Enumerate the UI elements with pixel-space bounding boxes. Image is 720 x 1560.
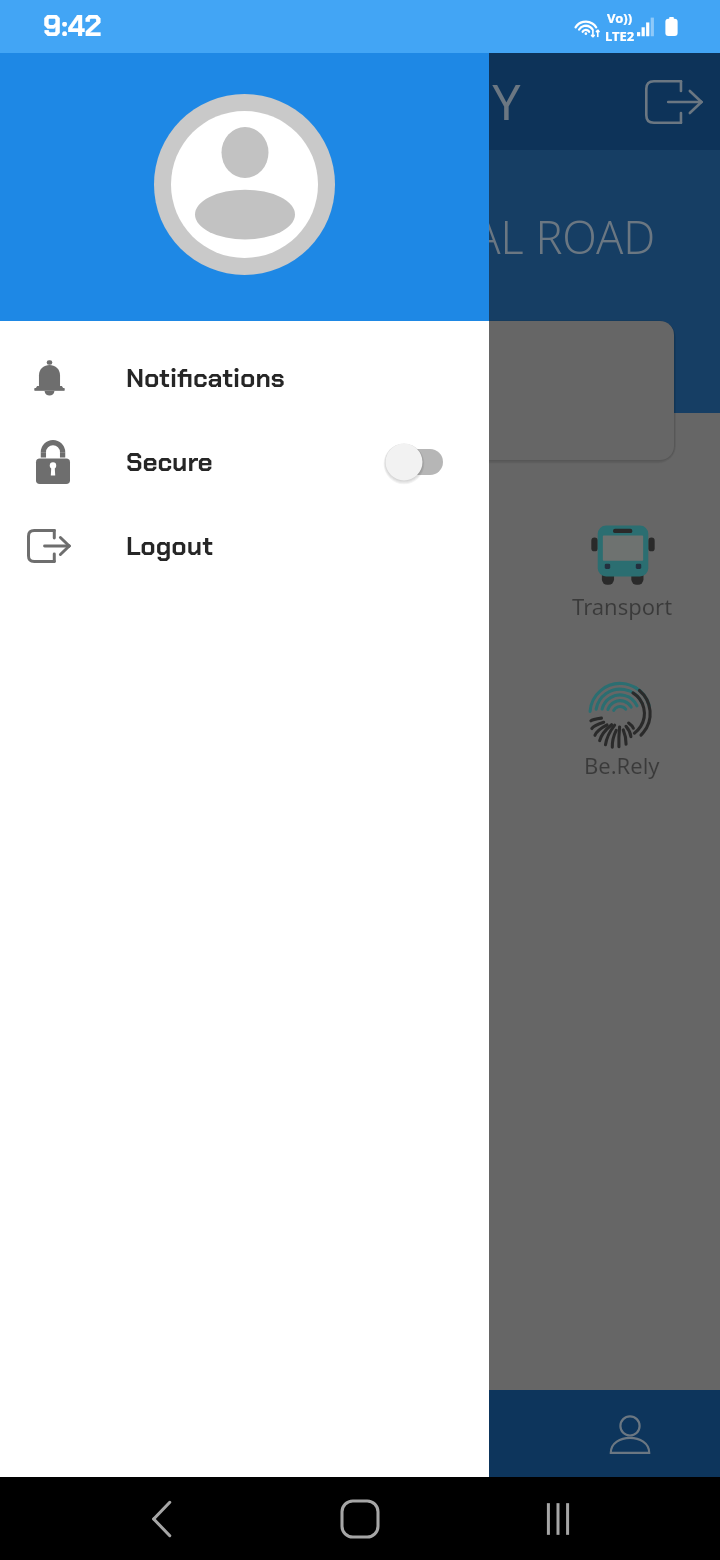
staticText: Logout	[126, 529, 213, 563]
button[interactable]: Logout	[638, 66, 710, 138]
button[interactable]: Transport	[572, 523, 673, 621]
staticText: THE COMPANY	[174, 67, 521, 135]
button[interactable]: Home	[324, 1483, 396, 1555]
staticText: Be.Rely	[584, 750, 660, 780]
staticText: Vo))	[607, 9, 633, 27]
button[interactable]: Nav 3	[540, 1390, 720, 1477]
button[interactable]: Logout	[0, 504, 489, 588]
button[interactable]: Notifications	[0, 336, 489, 420]
staticText: Notifications	[126, 361, 285, 395]
button[interactable]: Recent apps	[522, 1483, 594, 1555]
button[interactable]	[385, 443, 443, 481]
staticText: Transport	[572, 591, 673, 621]
button[interactable]: Nav 2	[360, 1390, 540, 1477]
staticText: Secure	[126, 445, 213, 479]
button[interactable]: Back	[126, 1483, 198, 1555]
button[interactable]: Be.Rely	[584, 682, 660, 780]
staticText: 9:42	[43, 7, 102, 45]
staticText: SOUTH CENTRAL ROAD	[177, 206, 656, 267]
button[interactable]: Secure	[0, 420, 489, 504]
staticText: LTE2	[605, 27, 635, 45]
